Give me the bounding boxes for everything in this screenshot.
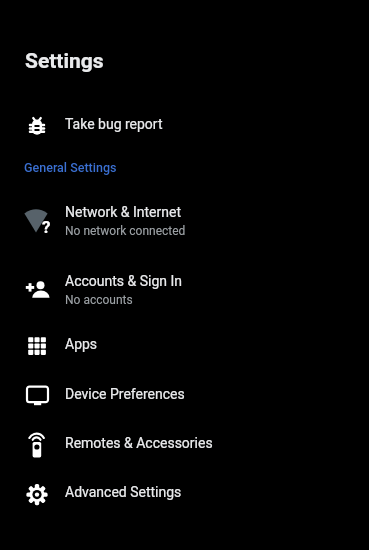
- staticText: Device Preferences: [65, 386, 185, 402]
- staticText: Apps: [65, 336, 98, 352]
- staticText: Network & Internet: [65, 204, 182, 220]
- staticText: No network connected: [65, 224, 186, 238]
- staticText: Accounts & Sign In: [65, 273, 183, 289]
- staticText: Advanced Settings: [65, 484, 182, 500]
- button[interactable]: Advanced Settings: [0, 470, 369, 518]
- button[interactable]: Device Preferences: [0, 372, 369, 420]
- button[interactable]: Take bug report: [0, 102, 369, 150]
- button[interactable]: Remotes & Accessories: [0, 421, 369, 469]
- button[interactable]: Accounts & Sign In: [0, 255, 369, 325]
- button[interactable]: Apps: [0, 322, 369, 370]
- staticText: No accounts: [65, 293, 133, 307]
- staticText: Take bug report: [65, 116, 163, 132]
- staticText: General Settings: [24, 160, 117, 175]
- button[interactable]: ?: [0, 186, 369, 256]
- staticText: ?: [42, 217, 51, 237]
- staticText: Remotes & Accessories: [65, 435, 213, 451]
- staticText: Settings: [25, 49, 104, 74]
